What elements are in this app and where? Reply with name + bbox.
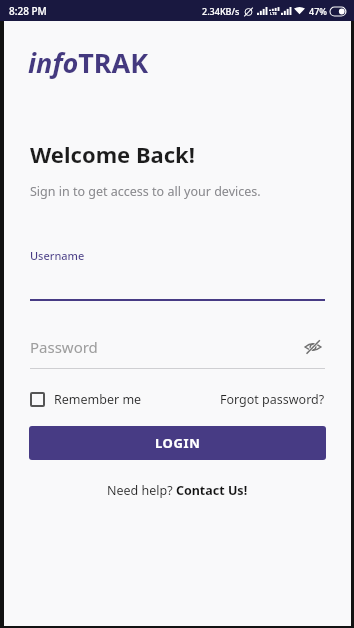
button[interactable]: Remember me — [30, 391, 142, 408]
staticText: 47% — [309, 5, 327, 17]
staticText: 8:28 PM — [9, 4, 47, 18]
staticText: Username — [30, 248, 85, 263]
staticText: infoTRAK — [28, 44, 149, 81]
staticText: LOGIN — [155, 434, 201, 452]
staticText: Forgot password? — [220, 391, 325, 408]
button[interactable]: Show password — [301, 335, 325, 359]
staticText: Welcome Back! — [30, 139, 195, 169]
staticText: Password — [30, 337, 301, 357]
button[interactable]: Password — [30, 335, 325, 359]
staticText: Need help? Contact Us! — [107, 482, 248, 499]
button[interactable]: LOGIN — [29, 426, 326, 460]
button[interactable]: Forgot password? — [220, 391, 325, 408]
staticText: 2.34KB/s — [202, 5, 240, 17]
button[interactable]: Need help? Contact Us! — [107, 482, 248, 499]
staticText: Remember me — [54, 391, 142, 408]
staticText: LTE — [270, 11, 277, 16]
staticText: Sign in to get access to all your device… — [30, 183, 261, 200]
